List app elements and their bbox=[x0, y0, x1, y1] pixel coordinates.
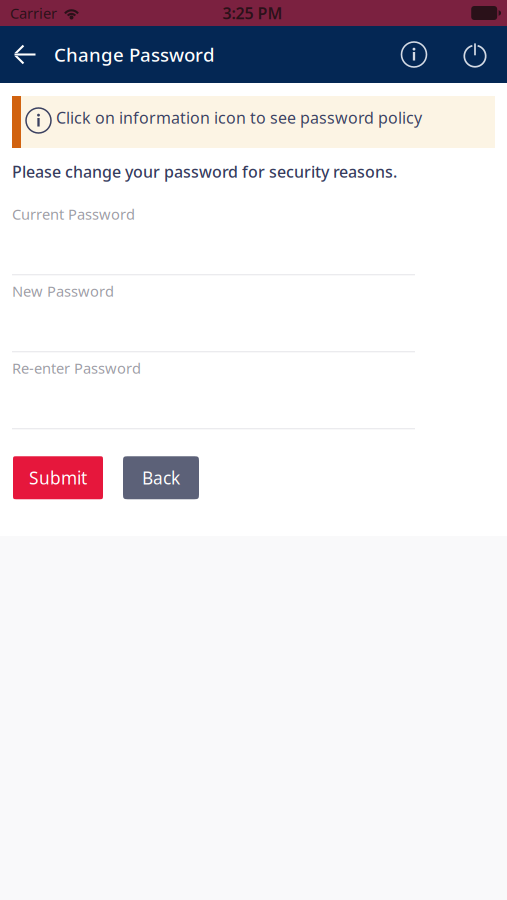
staticText: Change Password bbox=[54, 42, 215, 67]
staticText: Please change your password for security… bbox=[12, 161, 397, 182]
staticText: Carrier bbox=[10, 3, 57, 23]
staticText: 3:25 PM bbox=[222, 2, 282, 24]
button[interactable]: Password policy information bbox=[389, 26, 439, 83]
staticText: Submit bbox=[29, 466, 87, 489]
staticText: Back bbox=[142, 466, 180, 489]
staticText: Click on information icon to see passwor… bbox=[56, 107, 422, 128]
button[interactable]: Log out bbox=[450, 26, 500, 83]
staticText: Re-enter Password bbox=[12, 358, 141, 378]
button[interactable]: Submit bbox=[13, 456, 103, 499]
button[interactable]: New Password bbox=[12, 275, 415, 352]
staticText: Current Password bbox=[12, 204, 135, 224]
button[interactable]: Back bbox=[3, 26, 47, 83]
button[interactable]: Re-enter Password bbox=[12, 352, 415, 429]
button[interactable]: Back bbox=[123, 456, 199, 499]
button[interactable]: Current Password bbox=[12, 198, 415, 275]
staticText: New Password bbox=[12, 281, 114, 301]
